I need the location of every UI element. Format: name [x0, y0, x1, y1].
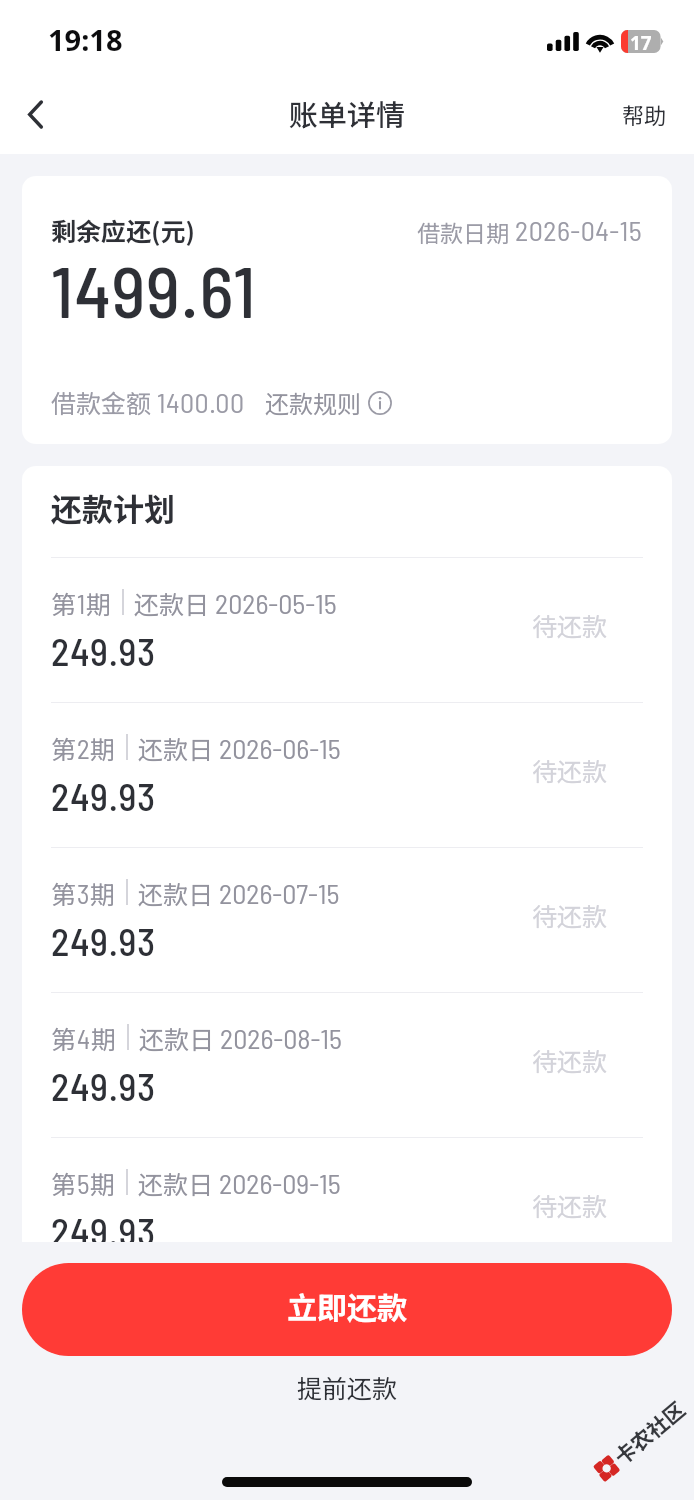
staticText: 1499.61: [51, 246, 257, 332]
staticText: 立即还款: [287, 1284, 407, 1327]
button[interactable]: 第: [22, 993, 672, 1137]
staticText: 2026-06-15: [219, 731, 341, 765]
button[interactable]: 第: [22, 703, 672, 847]
button[interactable]: 第: [22, 1138, 672, 1282]
staticText: 2026-07-15: [219, 876, 340, 910]
staticText: 借款金额: [51, 384, 157, 420]
staticText: 还款日: [138, 875, 219, 911]
staticText: 还款日: [138, 730, 219, 766]
staticText: 还款日: [134, 585, 215, 621]
button[interactable]: 帮助: [593, 78, 694, 150]
staticText: 提前还款: [297, 1369, 398, 1405]
staticText: 期: [86, 585, 112, 621]
staticText: 17: [630, 30, 652, 53]
staticText: 剩余应还(元): [51, 212, 195, 248]
button[interactable]: 提前还款: [0, 1356, 694, 1422]
staticText: 249.93: [51, 628, 156, 674]
staticText: 待还款: [532, 1187, 608, 1223]
staticText: 2026-04-15: [515, 213, 643, 247]
staticText: 1400.00: [157, 385, 245, 419]
staticText: 期: [90, 730, 116, 766]
staticText: 还款规则: [265, 385, 361, 420]
staticText: 2026-09-15: [219, 1166, 341, 1200]
staticText: 249.93: [51, 773, 156, 819]
staticText: 19:18: [48, 20, 123, 59]
staticText: 待还款: [532, 1042, 608, 1078]
staticText: 待还款: [532, 607, 608, 643]
button[interactable]: 还款规则: [265, 385, 392, 420]
staticText: 2026-08-15: [220, 1021, 342, 1055]
staticText: 还款日: [138, 1165, 219, 1201]
staticText: 第: [51, 875, 77, 911]
staticText: 249.93: [51, 1208, 156, 1254]
staticText: 第: [51, 1020, 77, 1056]
staticText: 待还款: [532, 752, 608, 788]
staticText: 还款计划: [51, 485, 175, 530]
staticText: 账单详情: [289, 92, 406, 134]
staticText: 第: [51, 585, 77, 621]
staticText: 1: [77, 587, 86, 619]
staticText: 帮助: [622, 98, 667, 130]
button[interactable]: Back: [0, 78, 76, 154]
staticText: 第: [51, 1165, 77, 1201]
button[interactable]: 立即还款: [22, 1263, 672, 1356]
staticText: 期: [91, 1020, 117, 1056]
staticText: 249.93: [51, 918, 156, 964]
staticText: 借款日期: [417, 215, 515, 248]
staticText: 249.93: [51, 1063, 156, 1109]
staticText: 期: [90, 875, 116, 911]
staticText: 卡农社区: [607, 1394, 691, 1471]
staticText: 第: [51, 730, 77, 766]
staticText: 5: [77, 1167, 90, 1199]
staticText: 还款日: [139, 1020, 220, 1056]
staticText: 2026-05-15: [215, 586, 337, 620]
staticText: 3: [77, 877, 90, 909]
staticText: 待还款: [532, 897, 608, 933]
staticText: 2: [77, 732, 90, 764]
staticText: 4: [77, 1022, 91, 1054]
button[interactable]: 第: [22, 848, 672, 992]
staticText: 期: [90, 1165, 116, 1201]
button[interactable]: 第: [22, 558, 672, 702]
